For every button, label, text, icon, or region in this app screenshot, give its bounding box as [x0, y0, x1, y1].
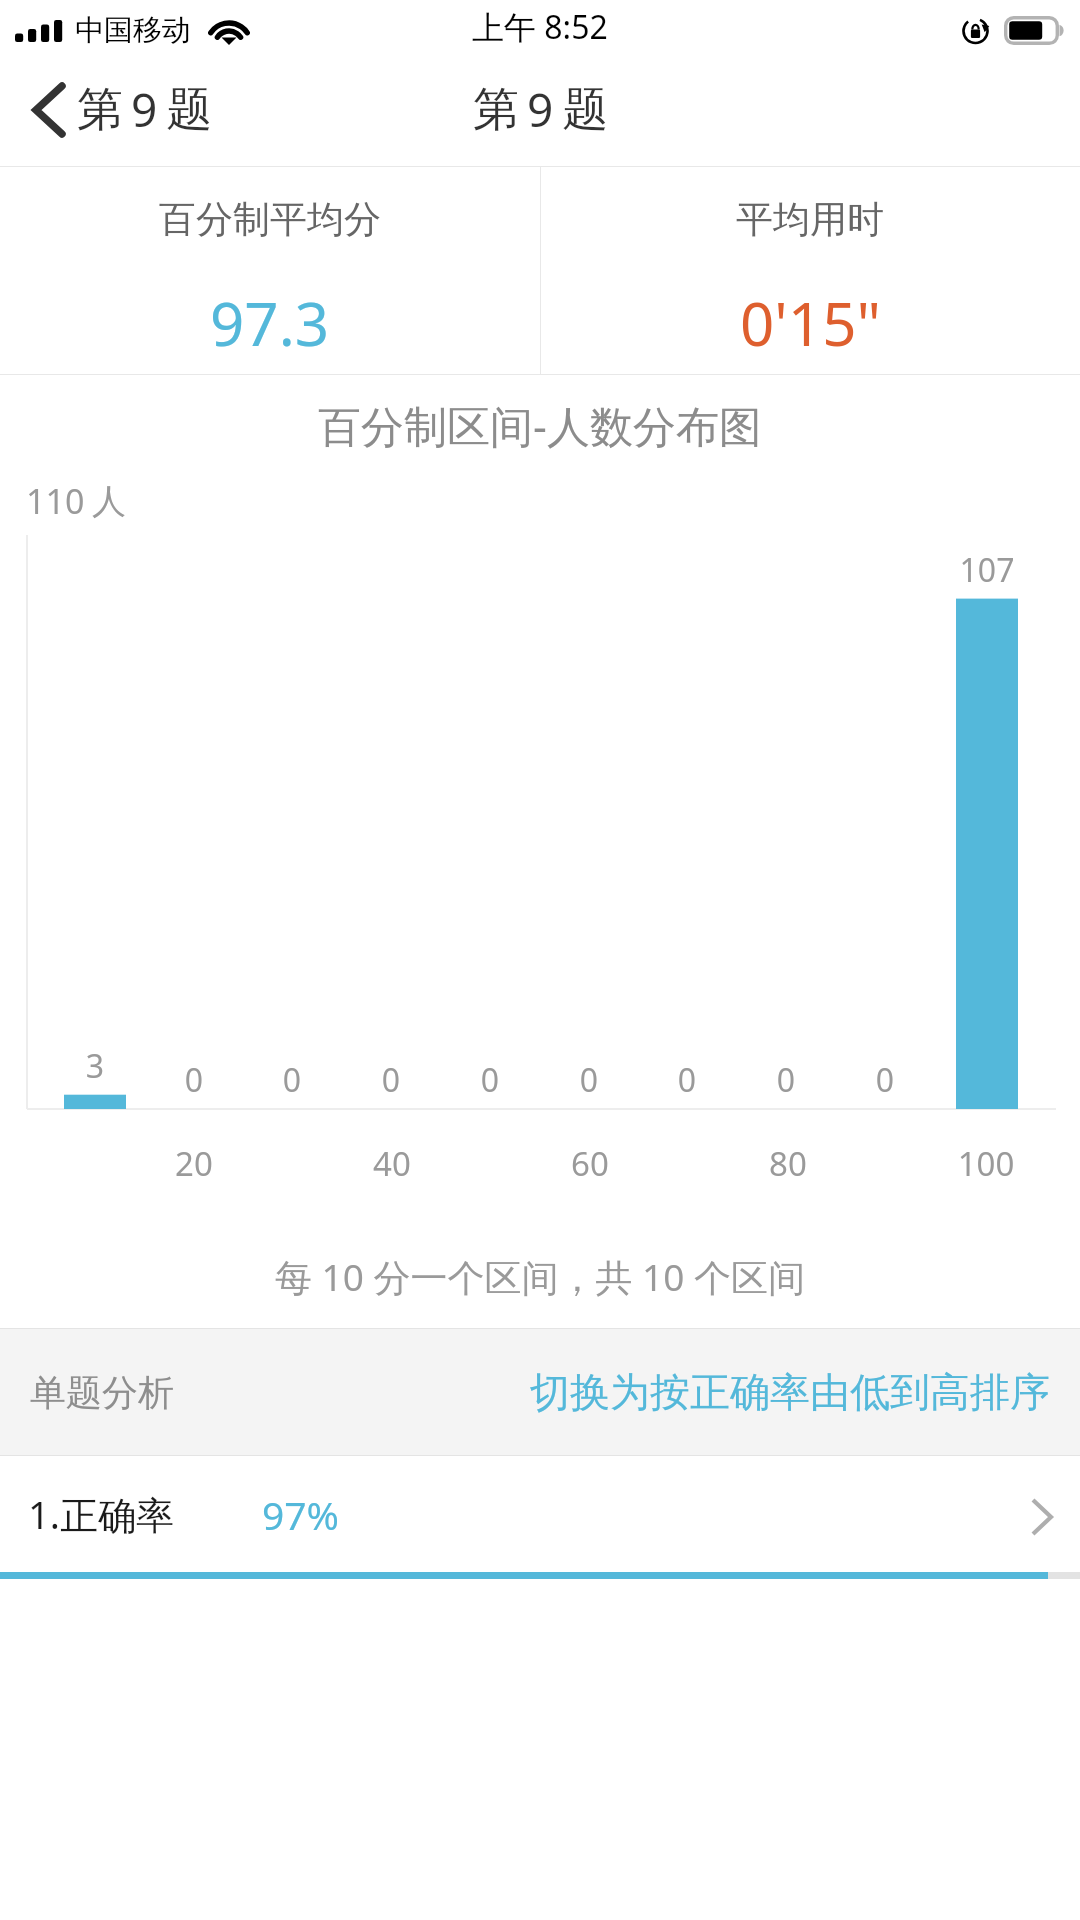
staticText: 0 [0, 1058, 931, 1102]
staticText: 0'15" [740, 282, 881, 364]
staticText: 110 [26, 478, 85, 524]
staticText: 题 [562, 81, 608, 139]
staticText: 0 [345, 1058, 1080, 1102]
staticText: 第 [473, 81, 519, 139]
staticText: 第 [77, 81, 123, 139]
staticText: 百分制区间-人数分布图 [0, 396, 1080, 455]
button[interactable]: Back to 第 9 题 [0, 70, 232, 149]
staticText: 1.正确率 [28, 1488, 174, 1540]
button[interactable]: 1.正确率 [0, 1456, 1080, 1579]
staticText: 题 [166, 81, 212, 139]
staticText: 9 [131, 78, 158, 141]
staticText: 0 [0, 1058, 734, 1102]
other: Open question detail [1031, 1498, 1055, 1536]
button[interactable]: 切换为按正确率由低到高排序 [530, 1367, 1080, 1417]
staticText: 中国移动 [75, 12, 191, 49]
staticText: 平均用时 [736, 196, 884, 243]
staticText: 9 [527, 78, 554, 141]
staticText: 97.3 [210, 282, 330, 364]
staticText: 40 [0, 1141, 932, 1186]
button[interactable]: 平均用时 [540, 167, 1080, 375]
button[interactable]: 百分制平均分 [0, 167, 540, 375]
staticText: 80 [248, 1141, 1080, 1186]
staticText: 0 [0, 1058, 1030, 1102]
staticText: 107 [447, 548, 1080, 592]
staticText: 20 [0, 1141, 734, 1186]
staticText: 97% [262, 1488, 340, 1541]
staticText: 每 10 分一个区间，共 10 个区间 [0, 1251, 1080, 1302]
staticText: 0 [0, 1058, 832, 1102]
staticText: 0 [246, 1058, 1080, 1102]
staticText: 60 [50, 1141, 1080, 1186]
staticText: 100 [446, 1141, 1080, 1186]
staticText: 3 [0, 1044, 635, 1088]
staticText: 人 [92, 480, 126, 523]
staticText: 上午 8:52 [472, 5, 608, 49]
staticText: 0 [147, 1058, 1080, 1102]
staticText: 单题分析 [30, 1370, 174, 1415]
staticText: 百分制平均分 [159, 196, 381, 243]
staticText: 0 [49, 1058, 1080, 1102]
